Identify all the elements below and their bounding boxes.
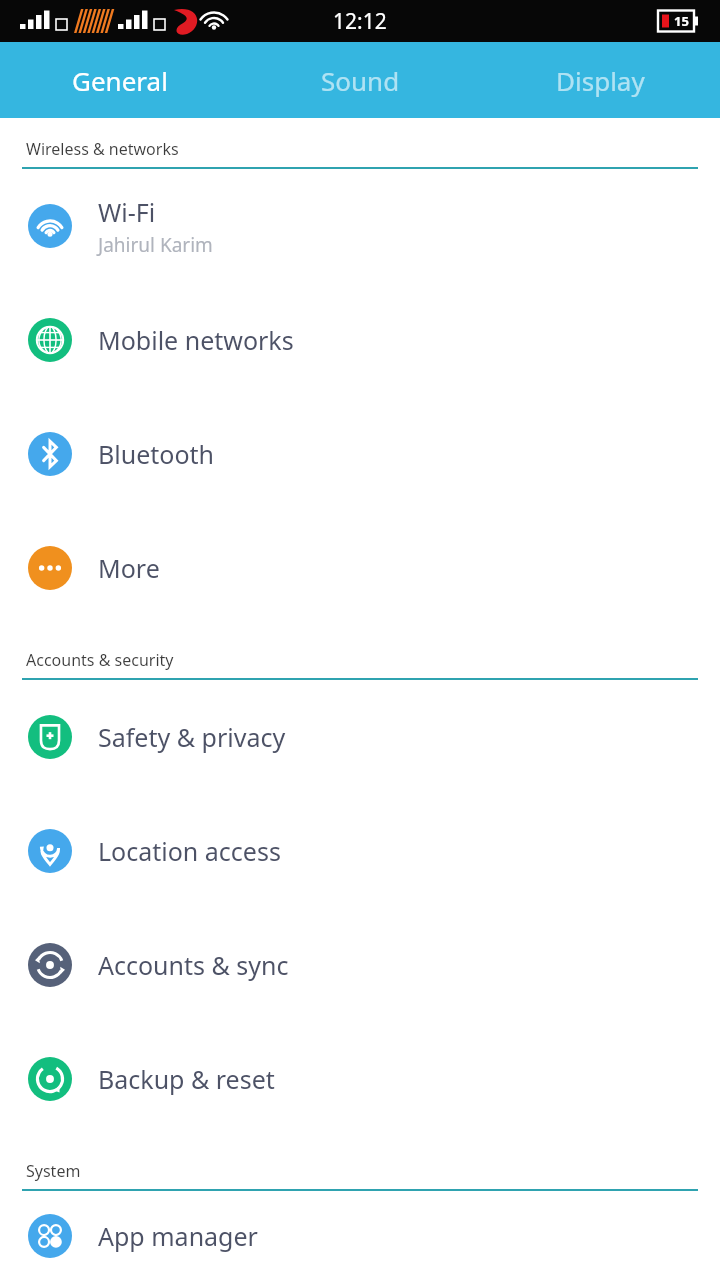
other: Location access bbox=[28, 829, 72, 873]
staticText: 12:12 bbox=[333, 7, 387, 36]
button[interactable]: Sound bbox=[240, 42, 480, 118]
staticText: Wi-Fi bbox=[98, 195, 156, 229]
staticText: Display bbox=[556, 63, 645, 98]
button[interactable]: Wi-Fi bbox=[0, 169, 720, 283]
button[interactable]: Backup and reset bbox=[0, 1022, 720, 1136]
staticText: App manager bbox=[98, 1219, 258, 1253]
staticText: 15 bbox=[674, 12, 689, 30]
other: Bluetooth bbox=[28, 432, 72, 476]
button[interactable]: App manager bbox=[0, 1191, 720, 1280]
button[interactable]: Accounts and sync bbox=[0, 908, 720, 1022]
other: Backup and reset bbox=[28, 1057, 72, 1101]
staticText: Mobile networks bbox=[98, 323, 294, 357]
staticText: Accounts & security bbox=[26, 649, 174, 671]
other: More bbox=[28, 546, 72, 590]
button[interactable]: Location access bbox=[0, 794, 720, 908]
staticText: General bbox=[72, 63, 168, 98]
button[interactable]: General bbox=[0, 42, 240, 118]
staticText: More bbox=[98, 551, 160, 585]
other: Accounts and sync bbox=[28, 943, 72, 987]
staticText: Backup & reset bbox=[98, 1062, 275, 1096]
button[interactable]: More bbox=[0, 511, 720, 625]
other: Mobile networks bbox=[28, 318, 72, 362]
button[interactable]: Bluetooth bbox=[0, 397, 720, 511]
staticText: Sound bbox=[321, 63, 400, 98]
button[interactable]: Safety and privacy bbox=[0, 680, 720, 794]
button[interactable]: Display bbox=[480, 42, 720, 118]
button[interactable]: Mobile networks bbox=[0, 283, 720, 397]
staticText: Jahirul Karim bbox=[98, 232, 213, 258]
staticText: Accounts & sync bbox=[98, 948, 289, 982]
staticText: Location access bbox=[98, 834, 281, 868]
other: App manager bbox=[28, 1214, 72, 1258]
staticText: Wireless & networks bbox=[26, 138, 179, 160]
staticText: Safety & privacy bbox=[98, 720, 286, 754]
staticText: System bbox=[26, 1160, 81, 1182]
other: Wi-Fi bbox=[28, 204, 72, 248]
staticText: Bluetooth bbox=[98, 437, 215, 471]
other: Safety and privacy bbox=[28, 715, 72, 759]
